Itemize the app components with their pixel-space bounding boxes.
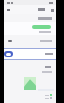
button[interactable] [4, 35, 56, 46]
button[interactable]: Menu [4, 6, 12, 14]
button[interactable] [4, 22, 56, 35]
button[interactable] [4, 48, 56, 60]
button[interactable] [4, 14, 56, 22]
button[interactable]: Back [48, 6, 56, 14]
button[interactable]: Toggle [4, 51, 13, 57]
